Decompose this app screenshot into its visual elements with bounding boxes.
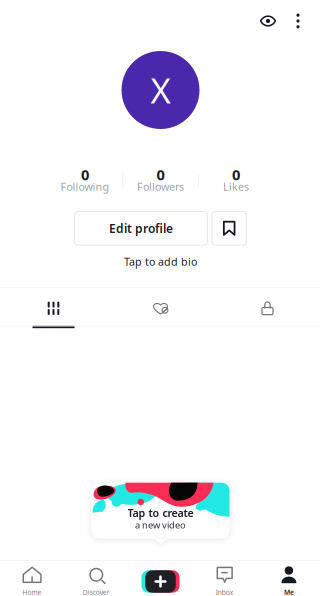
- button[interactable]: Private: [214, 288, 321, 326]
- button[interactable]: Edit profile: [74, 211, 208, 246]
- button[interactable]: Tap to add bio: [124, 254, 197, 270]
- staticText: 0: [81, 165, 89, 184]
- staticText: Edit profile: [109, 220, 173, 236]
- staticText: Home: [23, 588, 42, 596]
- staticText: 0: [232, 165, 240, 184]
- staticText: 0: [156, 165, 164, 184]
- staticText: Me: [284, 588, 294, 596]
- button[interactable]: More options: [283, 6, 313, 36]
- button[interactable]: Me: [257, 566, 321, 596]
- staticText: a new video: [135, 519, 186, 531]
- button[interactable]: View history: [253, 6, 283, 36]
- button[interactable]: 0: [48, 169, 122, 193]
- button[interactable]: Liked: [107, 288, 214, 326]
- staticText: Following: [61, 179, 110, 194]
- button[interactable]: 0: [199, 169, 273, 193]
- staticText: Followers: [137, 179, 184, 194]
- button[interactable]: Inbox: [193, 566, 257, 596]
- staticText: Likes: [223, 179, 249, 194]
- staticText: Tap to create: [127, 506, 193, 520]
- staticText: Inbox: [216, 588, 234, 596]
- button[interactable]: Bookmarks: [212, 211, 247, 246]
- button[interactable]: 0: [123, 169, 198, 193]
- button[interactable]: Posts: [0, 288, 107, 326]
- button[interactable]: Create: [128, 567, 193, 595]
- staticText: Tap to add bio: [124, 254, 197, 269]
- staticText: X: [150, 67, 170, 113]
- button[interactable]: Discover: [64, 566, 128, 596]
- staticText: Discover: [83, 588, 110, 596]
- button[interactable]: Home: [0, 566, 64, 596]
